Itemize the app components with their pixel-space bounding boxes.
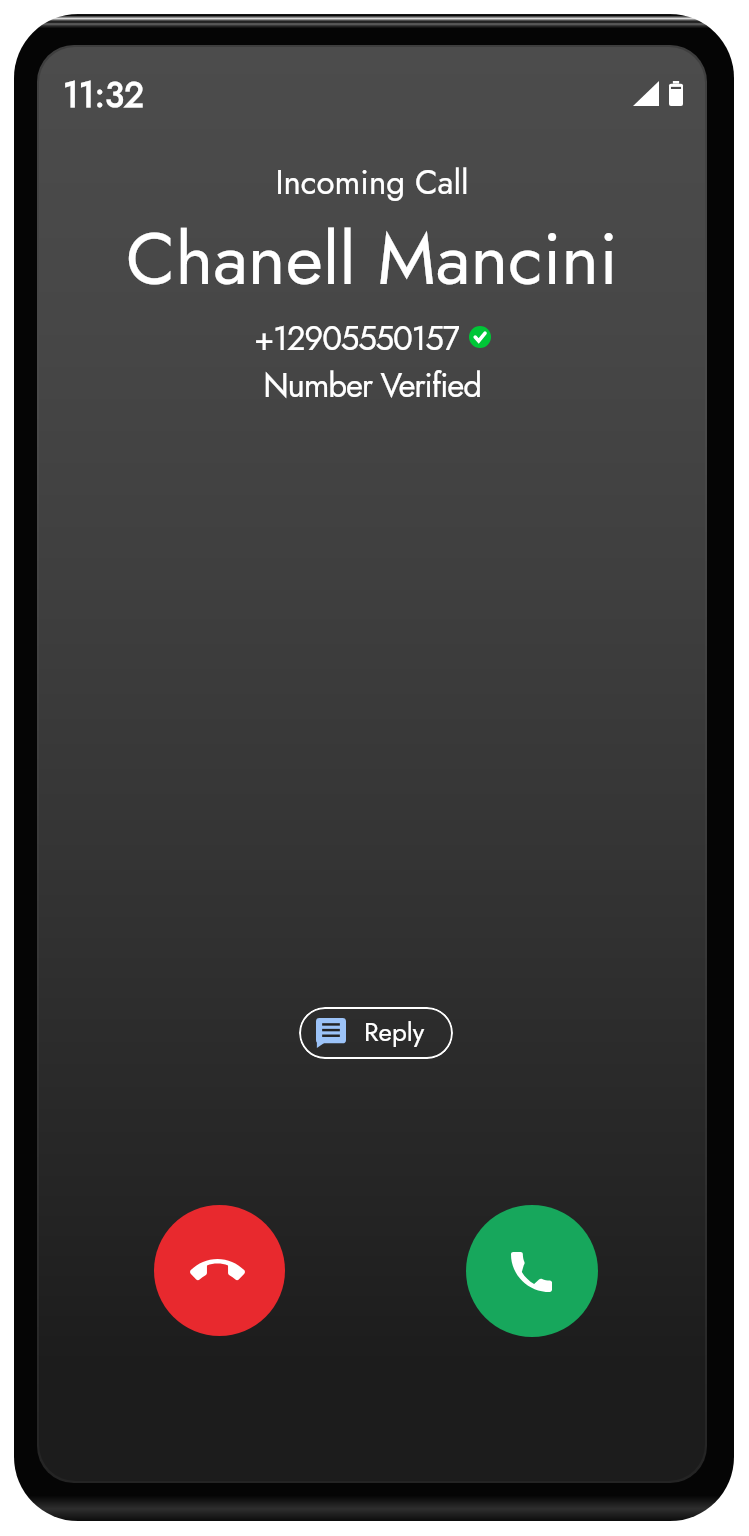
- button[interactable]: Reply: [299, 1007, 453, 1059]
- button[interactable]: Answer call: [466, 1205, 598, 1337]
- staticText: +12905550157: [254, 315, 459, 362]
- staticText: Reply: [364, 1013, 425, 1051]
- button[interactable]: Decline call: [154, 1205, 285, 1336]
- staticText: 11:32: [63, 70, 145, 121]
- staticText: Chanell Mancini: [39, 207, 705, 311]
- staticText: Incoming Call: [39, 159, 705, 207]
- staticText: Number Verified: [39, 362, 705, 410]
